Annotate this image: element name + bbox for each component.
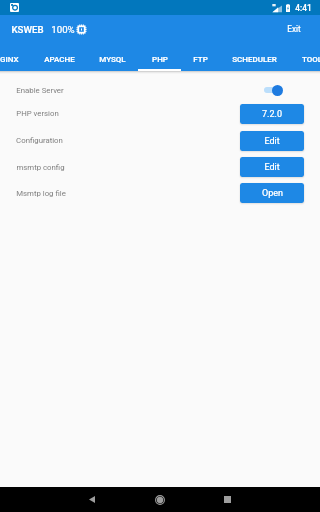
button[interactable]: NGINX [0,47,32,71]
staticText: KSWEB [11,24,44,35]
button[interactable]: FTP [181,47,220,71]
button[interactable]: Enable Server [0,80,320,100]
button[interactable]: APACHE [32,47,86,71]
staticText: Enable Server [16,86,64,95]
staticText: SCHEDULER [232,55,277,64]
staticText: Msmtp log file [16,189,66,198]
other: KSWEB notification [10,3,19,12]
staticText: 7.2.0 [262,109,282,120]
button[interactable]: Enable Server toggle [264,84,283,96]
staticText: Edit [264,136,280,147]
staticText: FTP [193,55,208,64]
button[interactable]: SCHEDULER [220,47,289,71]
button[interactable]: MYSQL [86,47,138,71]
staticText: PHP [152,55,168,64]
button[interactable]: Msmtp log file [0,180,320,206]
staticText: Exit [287,24,301,34]
staticText: Open [262,188,283,199]
button[interactable]: Back [75,487,109,512]
staticText: TOOLS [302,55,320,64]
staticText: NGINX [0,55,19,64]
staticText: MYSQL [99,55,126,64]
button[interactable]: msmtp config [0,154,320,180]
button[interactable]: Home [143,487,177,512]
button[interactable]: Open [240,183,304,203]
button[interactable]: Exit [268,13,320,45]
button[interactable]: PHP version [0,100,320,127]
button[interactable]: TOOLS [289,47,320,71]
staticText: Configuration [16,136,63,145]
button[interactable]: Edit [240,157,304,177]
staticText: PHP version [16,109,59,118]
staticText: msmtp config [16,163,65,172]
staticText: Edit [264,162,280,173]
button[interactable]: Edit [240,131,304,151]
button[interactable]: Recent apps [210,487,244,512]
button[interactable]: 7.2.0 [240,104,304,124]
button[interactable]: PHP [138,47,181,71]
staticText: 100% [51,24,75,35]
staticText: APACHE [44,55,75,64]
button[interactable]: Configuration [0,127,320,154]
staticText: 4:41 [295,3,312,13]
